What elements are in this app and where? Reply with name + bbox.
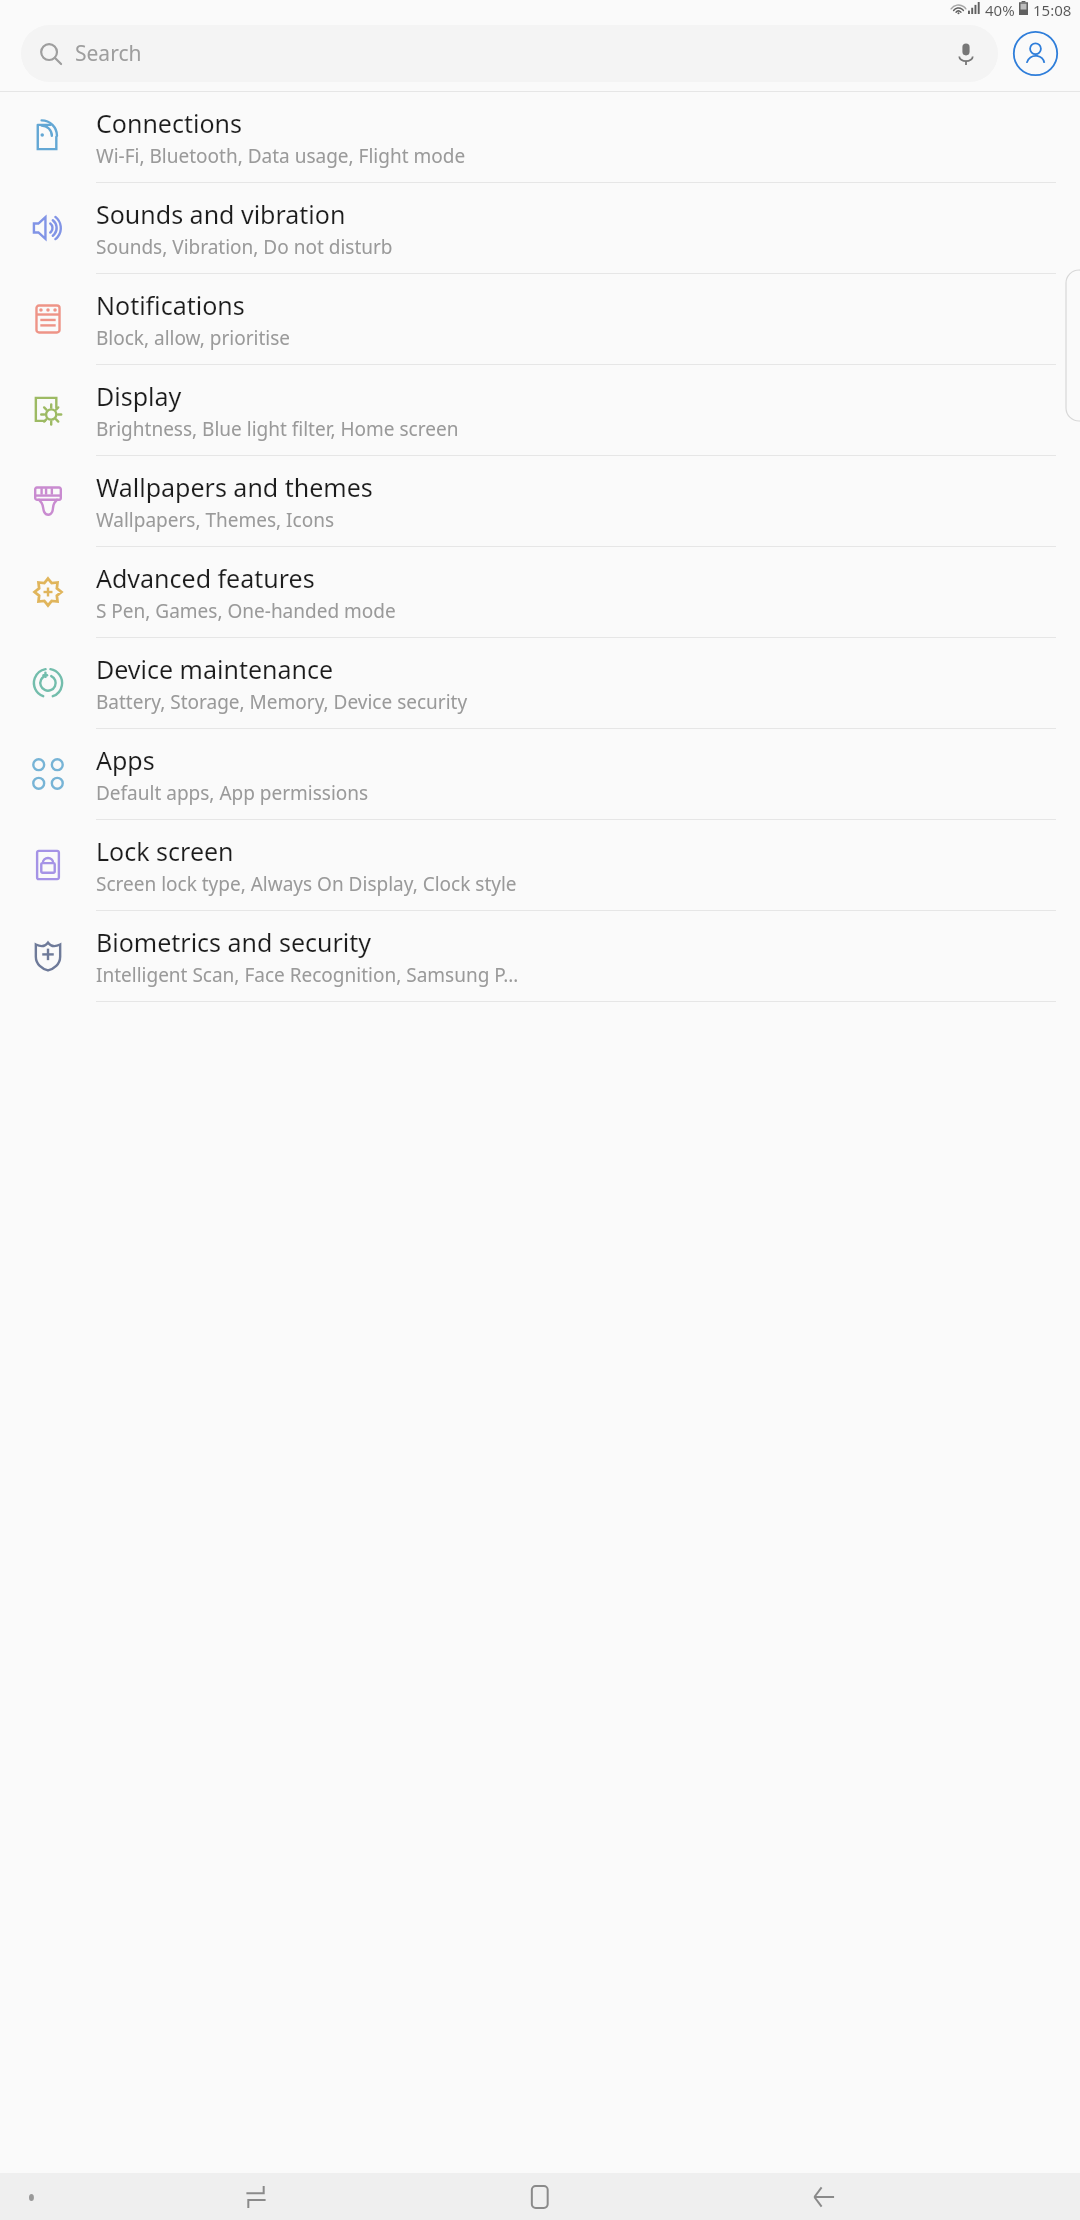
button[interactable]: Account [1012,30,1059,77]
staticText: Wi-Fi, Bluetooth, Data usage, Flight mod… [96,143,466,169]
button[interactable]: Back [796,2173,852,2220]
staticText: Biometrics and security [96,925,372,959]
staticText: Wallpapers and themes [96,470,373,504]
button[interactable]: Connections [0,92,1080,183]
staticText: S Pen, Games, One-handed mode [96,598,396,624]
staticText: Connections [96,106,242,140]
button[interactable]: Wallpapers and themes [0,456,1080,547]
button[interactable]: Biometrics and security [0,911,1080,1002]
staticText: Search [75,39,142,68]
staticText: 40% [985,0,1015,16]
staticText: Battery, Storage, Memory, Device securit… [96,689,468,715]
button[interactable]: Lock screen [0,820,1080,911]
button[interactable]: Keyboard indicator [17,2182,47,2212]
button[interactable]: Advanced features [0,547,1080,638]
staticText: 15:08 [1033,0,1072,16]
staticText: Lock screen [96,834,234,868]
staticText: Advanced features [96,561,315,595]
button[interactable]: Notifications [0,274,1080,365]
staticText: Brightness, Blue light filter, Home scre… [96,416,459,442]
staticText: Apps [96,743,155,777]
button[interactable]: Apps [0,729,1080,820]
button[interactable]: Voice search [952,40,980,68]
staticText: Notifications [96,288,245,322]
staticText: Default apps, App permissions [96,780,369,806]
staticText: Display [96,379,182,413]
staticText: Screen lock type, Always On Display, Clo… [96,871,517,897]
staticText: Intelligent Scan, Face Recognition, Sams… [96,962,519,988]
staticText: Sounds and vibration [96,197,346,231]
button[interactable]: Home [512,2173,568,2220]
button[interactable]: Display [0,365,1080,456]
button[interactable]: Search [21,25,998,82]
staticText: Block, allow, prioritise [96,325,291,351]
staticText: Wallpapers, Themes, Icons [96,507,335,533]
staticText: Device maintenance [96,652,334,686]
button[interactable]: Sounds and vibration [0,183,1080,274]
staticText: Sounds, Vibration, Do not disturb [96,234,393,260]
button[interactable]: Recents [228,2173,284,2220]
button[interactable]: Device maintenance [0,638,1080,729]
